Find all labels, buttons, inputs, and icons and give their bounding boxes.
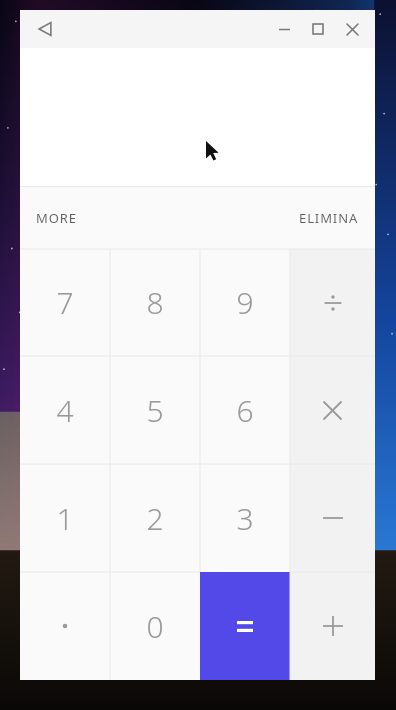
- staticText: 3: [236, 498, 254, 539]
- button[interactable]: 0: [110, 572, 200, 680]
- button[interactable]: ELIMINA: [299, 187, 359, 249]
- button[interactable]: 8: [110, 249, 200, 356]
- button[interactable]: [290, 249, 375, 356]
- button[interactable]: 1: [20, 464, 110, 572]
- button[interactable]: 2: [110, 464, 200, 572]
- staticText: 1: [56, 498, 74, 539]
- staticText: MORE: [36, 209, 77, 227]
- staticText: 8: [146, 282, 164, 323]
- button[interactable]: Maximize: [301, 12, 335, 46]
- button[interactable]: 7: [20, 249, 110, 356]
- button[interactable]: [20, 572, 110, 680]
- button[interactable]: [290, 572, 375, 680]
- button[interactable]: MORE: [36, 187, 77, 249]
- button[interactable]: 5: [110, 356, 200, 464]
- staticText: 6: [236, 390, 254, 431]
- button[interactable]: [200, 572, 290, 680]
- button[interactable]: [290, 464, 375, 572]
- button[interactable]: Back: [28, 12, 62, 46]
- staticText: 9: [236, 282, 254, 323]
- button[interactable]: 3: [200, 464, 290, 572]
- staticText: 7: [56, 282, 74, 323]
- staticText: 5: [146, 390, 164, 431]
- button[interactable]: 6: [200, 356, 290, 464]
- staticText: 2: [146, 498, 164, 539]
- button[interactable]: 9: [200, 249, 290, 356]
- button[interactable]: [290, 356, 375, 464]
- button[interactable]: 4: [20, 356, 110, 464]
- button[interactable]: Close: [335, 12, 369, 46]
- button[interactable]: Minimize: [267, 12, 301, 46]
- staticText: 4: [56, 390, 74, 431]
- staticText: ELIMINA: [299, 209, 359, 227]
- staticText: 0: [146, 606, 164, 647]
